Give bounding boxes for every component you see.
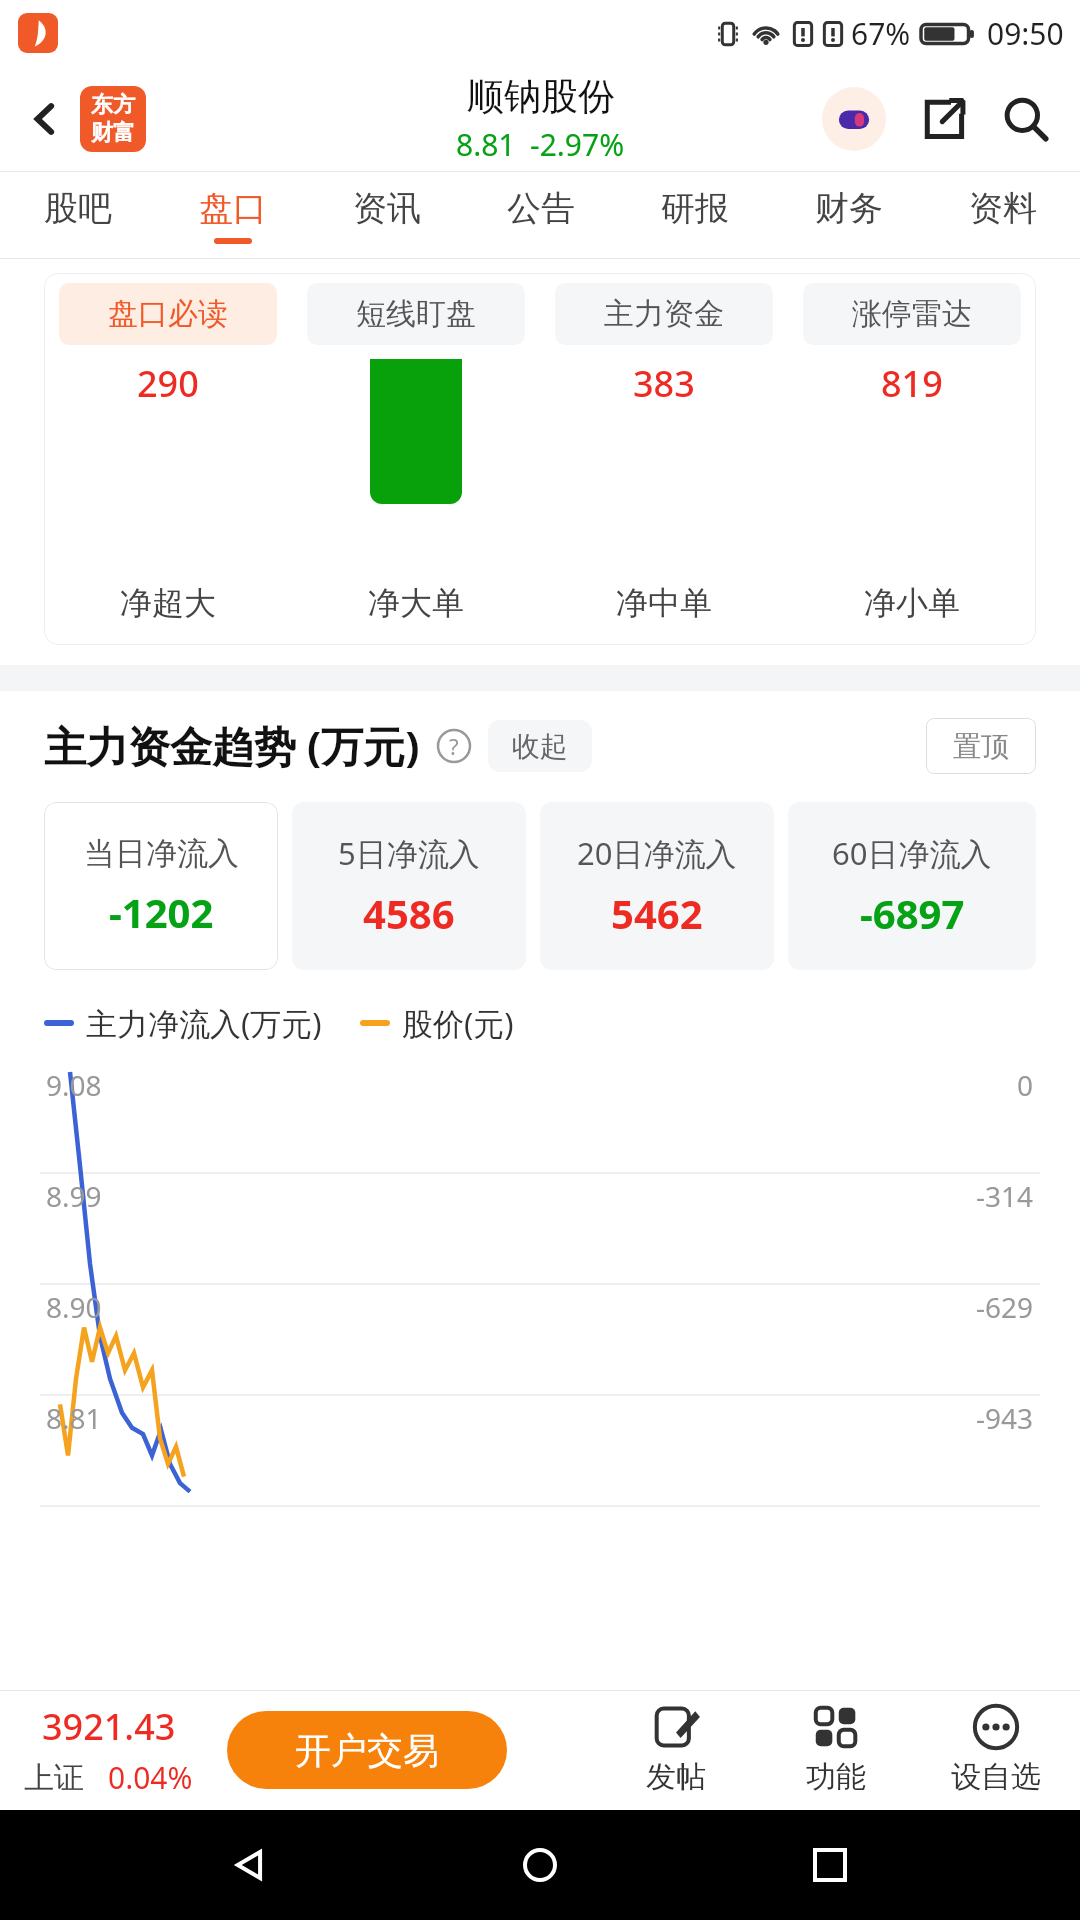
button[interactable]: 财务 — [772, 172, 926, 258]
button[interactable]: 资料 — [926, 172, 1080, 258]
staticText: 东方 — [91, 91, 135, 119]
button[interactable]: East Money — [80, 86, 146, 152]
button[interactable]: 主力资金 — [540, 273, 788, 645]
button[interactable]: 60日净流入 — [788, 802, 1036, 970]
staticText: 股价(元) — [402, 1002, 514, 1044]
staticText: 公告 — [507, 187, 575, 230]
button[interactable]: 资讯 — [310, 172, 464, 258]
staticText: 净中单 — [616, 583, 712, 623]
staticText: 研报 — [661, 187, 729, 230]
staticText: 主力净流入(万元) — [86, 1002, 322, 1044]
staticText: 290 — [137, 359, 199, 408]
staticText: 净超大 — [120, 583, 216, 623]
button[interactable]: 功能 — [776, 1704, 896, 1796]
button[interactable]: Back — [210, 1825, 290, 1905]
button[interactable]: Recents — [790, 1825, 870, 1905]
staticText: 383 — [633, 359, 695, 408]
staticText: 盘口 — [199, 187, 267, 230]
button[interactable]: 收起 — [488, 720, 592, 772]
staticText: ? — [449, 731, 459, 761]
staticText: 设自选 — [951, 1758, 1041, 1796]
staticText: 盘口必读 — [108, 295, 228, 333]
button[interactable]: 盘口必读 — [44, 273, 292, 645]
staticText: 短线盯盘 — [356, 295, 476, 333]
staticText: 8.90 — [46, 1288, 102, 1326]
button[interactable]: Search — [994, 87, 1058, 151]
staticText: 开户交易 — [295, 1728, 439, 1773]
staticText: 净小单 — [864, 583, 960, 623]
button[interactable]: 发帖 — [616, 1704, 736, 1796]
button[interactable]: 股吧 — [0, 172, 155, 258]
staticText: 主力资金 — [604, 295, 724, 333]
button[interactable]: 开户交易 — [227, 1711, 507, 1789]
button[interactable]: Help — [434, 726, 474, 766]
button[interactable]: 盘口 — [155, 172, 310, 258]
button[interactable]: AI assistant — [822, 87, 886, 151]
staticText: 财富 — [91, 119, 135, 147]
staticText: 3921.43 — [42, 1702, 176, 1751]
button[interactable]: 涨停雷达 — [788, 273, 1036, 645]
button[interactable]: 设自选 — [936, 1704, 1056, 1796]
staticText: 发帖 — [646, 1758, 706, 1796]
staticText: 收起 — [512, 729, 568, 764]
staticText: 8.99 — [46, 1177, 102, 1215]
staticText: 资讯 — [353, 187, 421, 230]
button[interactable]: 当日净流入 — [44, 802, 278, 970]
staticText: 当日净流入 — [84, 834, 239, 873]
button[interactable]: 20日净流入 — [540, 802, 774, 970]
staticText: 5日净流入 — [338, 832, 480, 874]
staticText: 20日净流入 — [577, 832, 737, 874]
staticText: -943 — [976, 1399, 1034, 1437]
staticText: 置顶 — [953, 729, 1009, 764]
button[interactable]: 5日净流入 — [292, 802, 526, 970]
staticText: 819 — [881, 359, 943, 408]
staticText: 资料 — [969, 187, 1037, 230]
staticText: 净大单 — [368, 583, 464, 623]
staticText: 0.04% — [108, 1757, 193, 1798]
button[interactable]: Share — [912, 87, 976, 151]
staticText: 8.81 — [456, 124, 516, 165]
staticText: 功能 — [806, 1758, 866, 1796]
staticText: -314 — [976, 1177, 1034, 1215]
staticText: 67% — [851, 13, 911, 54]
staticText: 9.08 — [46, 1066, 102, 1104]
staticText: 上证 — [24, 1759, 84, 1797]
staticText: 主力资金趋势 (万元) — [44, 717, 420, 774]
button[interactable]: 研报 — [618, 172, 772, 258]
staticText: -6897 — [860, 886, 965, 940]
staticText: 涨停雷达 — [852, 295, 972, 333]
staticText: 8.81 — [46, 1399, 102, 1437]
staticText: -629 — [976, 1288, 1034, 1326]
staticText: 0 — [1017, 1066, 1034, 1104]
staticText: 财务 — [815, 187, 883, 230]
button[interactable]: 短线盯盘 — [292, 273, 540, 645]
staticText: 5462 — [611, 886, 703, 940]
staticText: -2.97% — [530, 124, 625, 165]
staticText: 股吧 — [44, 187, 112, 230]
staticText: 顺钠股份 — [467, 73, 615, 120]
button[interactable]: 公告 — [464, 172, 618, 258]
staticText: 09:50 — [987, 13, 1064, 54]
button[interactable]: Back — [10, 84, 80, 154]
staticText: 60日净流入 — [832, 832, 992, 874]
button[interactable]: 置顶 — [926, 718, 1036, 774]
staticText: 4586 — [363, 886, 455, 940]
staticText: -1202 — [109, 885, 214, 939]
button[interactable]: 3921.43 — [24, 1702, 193, 1798]
button[interactable]: Home — [500, 1825, 580, 1905]
